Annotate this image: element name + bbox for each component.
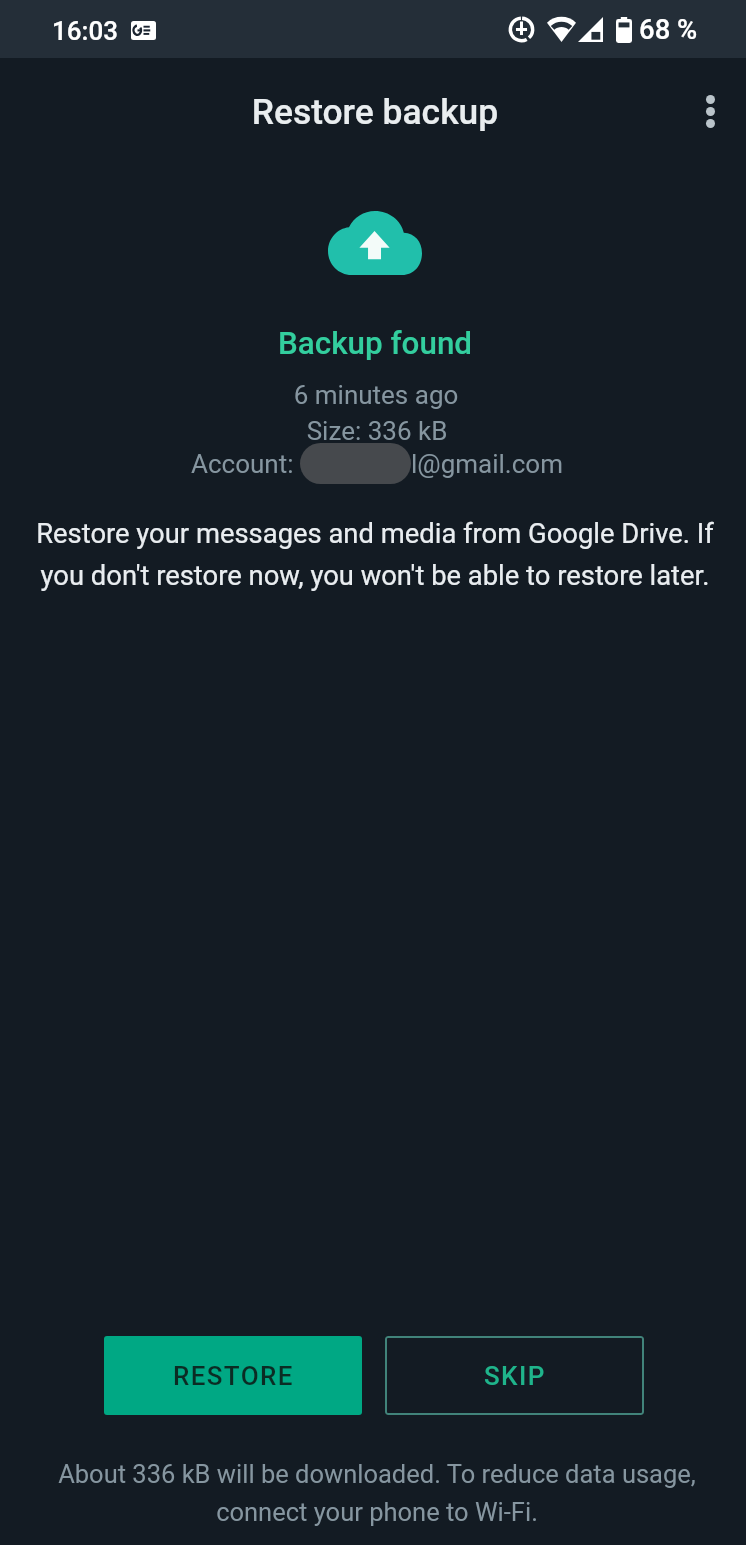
staticText: 6 minutes ago (3, 380, 746, 410)
button[interactable]: SKIP (385, 1336, 644, 1415)
staticText: SKIP (484, 1361, 546, 1391)
staticText: l@gmail.com (411, 449, 563, 479)
staticText: Restore your messages and media from Goo… (34, 518, 716, 592)
staticText: About 336 kB will be downloaded. To redu… (56, 1459, 698, 1527)
staticText: Size: 336 kB (4, 416, 746, 446)
staticText: Restore backup (2, 91, 746, 132)
button[interactable]: More options (678, 79, 742, 143)
staticText: 16:03 (52, 16, 119, 46)
staticText: RESTORE (173, 1361, 294, 1391)
staticText: 68 % (639, 13, 698, 45)
button[interactable]: RESTORE (104, 1336, 362, 1415)
staticText: Backup found (2, 325, 746, 362)
staticText: Account: (191, 449, 300, 479)
